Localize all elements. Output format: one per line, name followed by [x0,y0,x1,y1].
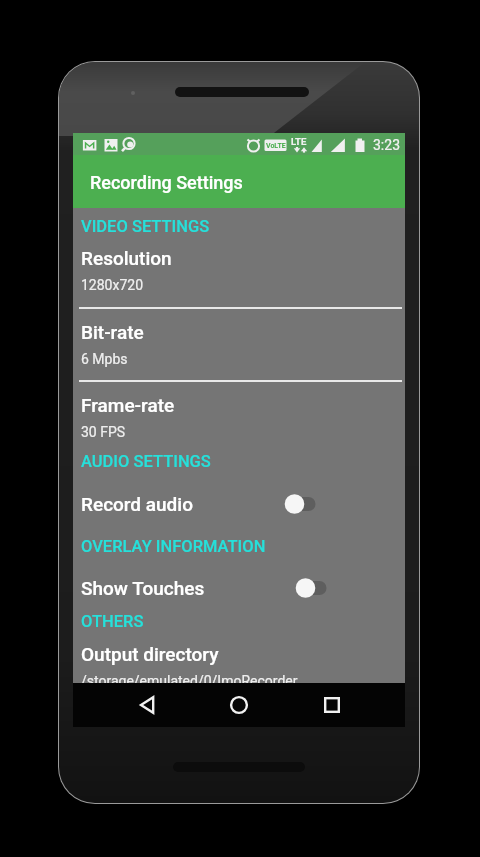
staticText: VIDEO SETTINGS [81,217,210,236]
staticText: /storage/emulated/0/ImoRecorder [81,673,298,689]
staticText: Recording Settings [90,172,243,193]
staticText: LTE [291,136,307,147]
staticText: 3:23 [373,137,400,153]
staticText: Output directory [81,643,219,665]
staticText: 1280x720 [81,277,144,293]
staticText: AUDIO SETTINGS [81,452,211,471]
staticText: Frame-rate [81,394,175,416]
button[interactable]: Home [214,683,264,727]
button[interactable]: Show Touches [73,568,405,610]
button[interactable]: Resolution [73,215,405,310]
button[interactable]: Record audio [73,483,405,527]
staticText: Record audio [81,493,193,515]
staticText: OTHERS [81,612,144,631]
staticText: OVERLAY INFORMATION [81,537,266,556]
staticText: 30 FPS [81,424,126,440]
button[interactable]: Output directory [73,636,405,683]
staticText: Bit-rate [81,321,144,343]
button[interactable]: Bit-rate [73,312,405,380]
staticText: Show Touches [81,577,205,599]
staticText: 6 Mpbs [81,351,128,367]
staticText: VoLTE [266,142,286,150]
button[interactable]: Back [131,683,181,727]
staticText: Resolution [81,247,172,269]
button[interactable]: Frame-rate [73,386,405,452]
button[interactable]: Recent apps [307,683,357,727]
